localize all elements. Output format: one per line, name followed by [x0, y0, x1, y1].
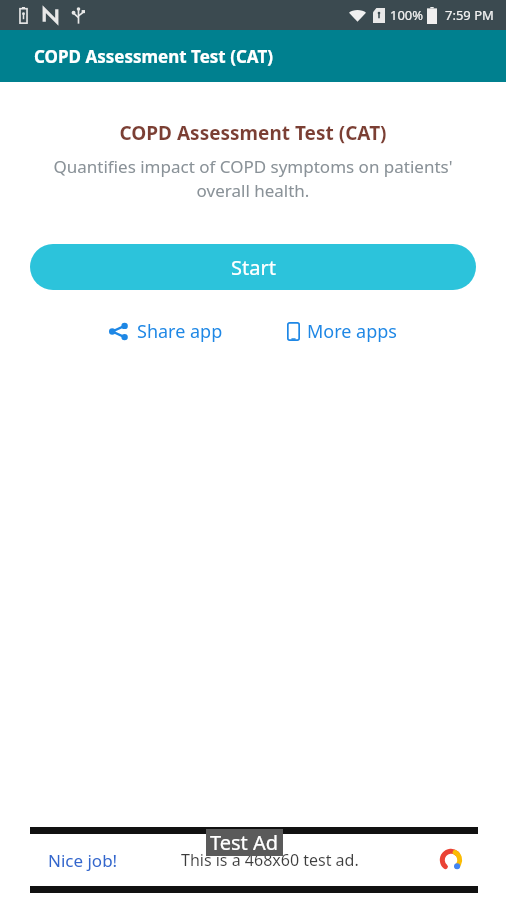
staticText: Share app	[137, 319, 223, 344]
staticText: COPD Assessment Test (CAT)	[119, 120, 387, 146]
other: Share app	[109, 323, 128, 340]
staticText: Test Ad	[210, 829, 279, 856]
staticText: Nice job!	[48, 849, 118, 872]
staticText: This is a 468x60 test ad.	[181, 849, 359, 871]
staticText: Start	[231, 254, 276, 281]
staticText: 100%	[390, 6, 424, 24]
other: More apps	[287, 322, 300, 341]
button[interactable]: More apps	[279, 313, 405, 350]
staticText: 7:59 PM	[445, 6, 494, 24]
staticText: More apps	[307, 319, 397, 344]
staticText: Quantifies impact of COPD symptoms on pa…	[24, 155, 482, 202]
staticText: COPD Assessment Test (CAT)	[34, 45, 273, 68]
button[interactable]: Share app	[101, 313, 231, 350]
button[interactable]: Start	[30, 244, 476, 290]
button[interactable]: Nice job!	[30, 827, 478, 893]
